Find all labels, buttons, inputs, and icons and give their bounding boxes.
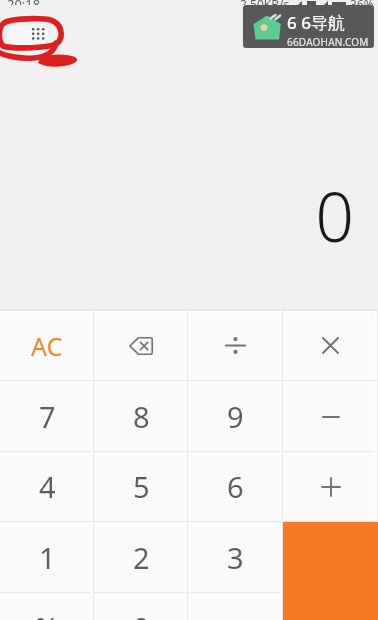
button[interactable]: Minus	[283, 381, 378, 452]
button[interactable]: Backspace	[94, 310, 188, 381]
staticText: 36%	[350, 0, 374, 12]
button[interactable]: %	[0, 592, 94, 620]
staticText: 1	[39, 538, 56, 577]
staticText: 0	[133, 608, 150, 620]
button[interactable]: 2	[94, 522, 188, 593]
staticText: 8	[133, 397, 150, 436]
button[interactable]: 1	[0, 522, 94, 593]
button[interactable]: Divide	[188, 310, 283, 381]
button[interactable]: 7	[0, 381, 94, 452]
staticText: 2	[133, 538, 150, 577]
button[interactable]: 3	[188, 522, 283, 593]
button[interactable]: Multiply	[283, 310, 378, 381]
staticText: AC	[31, 329, 63, 363]
staticText: 20:18	[7, 0, 41, 13]
staticText: 6 6导航	[287, 11, 345, 34]
button[interactable]: Plus	[283, 451, 378, 522]
button[interactable]: 0	[94, 592, 188, 620]
staticText: 6	[227, 467, 244, 506]
button[interactable]: AC	[0, 310, 94, 381]
staticText: %	[35, 608, 60, 620]
button[interactable]: 9	[188, 381, 283, 452]
button[interactable]: 4	[0, 451, 94, 522]
button[interactable]: 6	[188, 451, 283, 522]
staticText: 66DAOHAN.COM	[287, 35, 369, 48]
staticText: 3	[227, 538, 244, 577]
button[interactable]: 5	[94, 451, 188, 522]
staticText: 0	[315, 169, 354, 262]
staticText: 2.50KB/s	[240, 0, 290, 12]
staticText: 9	[227, 397, 244, 436]
staticText: 4	[39, 467, 56, 506]
button[interactable]: .	[188, 592, 283, 620]
staticText: 5	[133, 467, 150, 506]
button[interactable]: Keypad	[7, 26, 48, 45]
staticText: 7	[39, 397, 56, 436]
button[interactable]: 8	[94, 381, 188, 452]
